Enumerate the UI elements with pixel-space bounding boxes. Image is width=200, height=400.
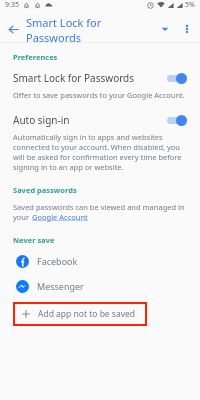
staticText: 9:35 [5, 0, 19, 10]
button[interactable]: Back [0, 16, 26, 42]
staticText: Add app not to be saved [38, 308, 136, 320]
staticText: Saved passwords [13, 185, 77, 195]
staticText: Preferences [13, 52, 58, 62]
button[interactable]: Toggle [165, 113, 187, 127]
staticText: Smart Lock for Passwords [26, 15, 154, 42]
button[interactable]: Toggle [165, 71, 187, 85]
button[interactable]: Add app not to be saved [13, 302, 147, 326]
staticText: Facebook [37, 255, 78, 267]
staticText: Never save [13, 235, 55, 245]
staticText: Google Account [32, 212, 88, 222]
button[interactable]: Facebook [13, 251, 187, 271]
button[interactable]: Smart Lock for Passwords [13, 71, 187, 85]
staticText: Saved passwords can be viewed and manage… [13, 202, 185, 212]
staticText: Offer to save passwords to your Google A… [13, 90, 185, 100]
staticText: Auto sign-in [13, 113, 165, 127]
staticText: 5% [185, 0, 195, 10]
staticText: your [13, 212, 32, 222]
staticText: Smart Lock for Passwords [13, 71, 165, 85]
button[interactable]: Google Account [32, 212, 88, 222]
button[interactable]: More options [176, 18, 198, 40]
staticText: Messenger [37, 280, 84, 292]
button[interactable]: Messenger [13, 276, 187, 296]
staticText: Automatically sign in to apps and websit… [13, 132, 187, 172]
button[interactable]: Select account [154, 18, 176, 40]
button[interactable]: Auto sign-in [13, 113, 187, 127]
